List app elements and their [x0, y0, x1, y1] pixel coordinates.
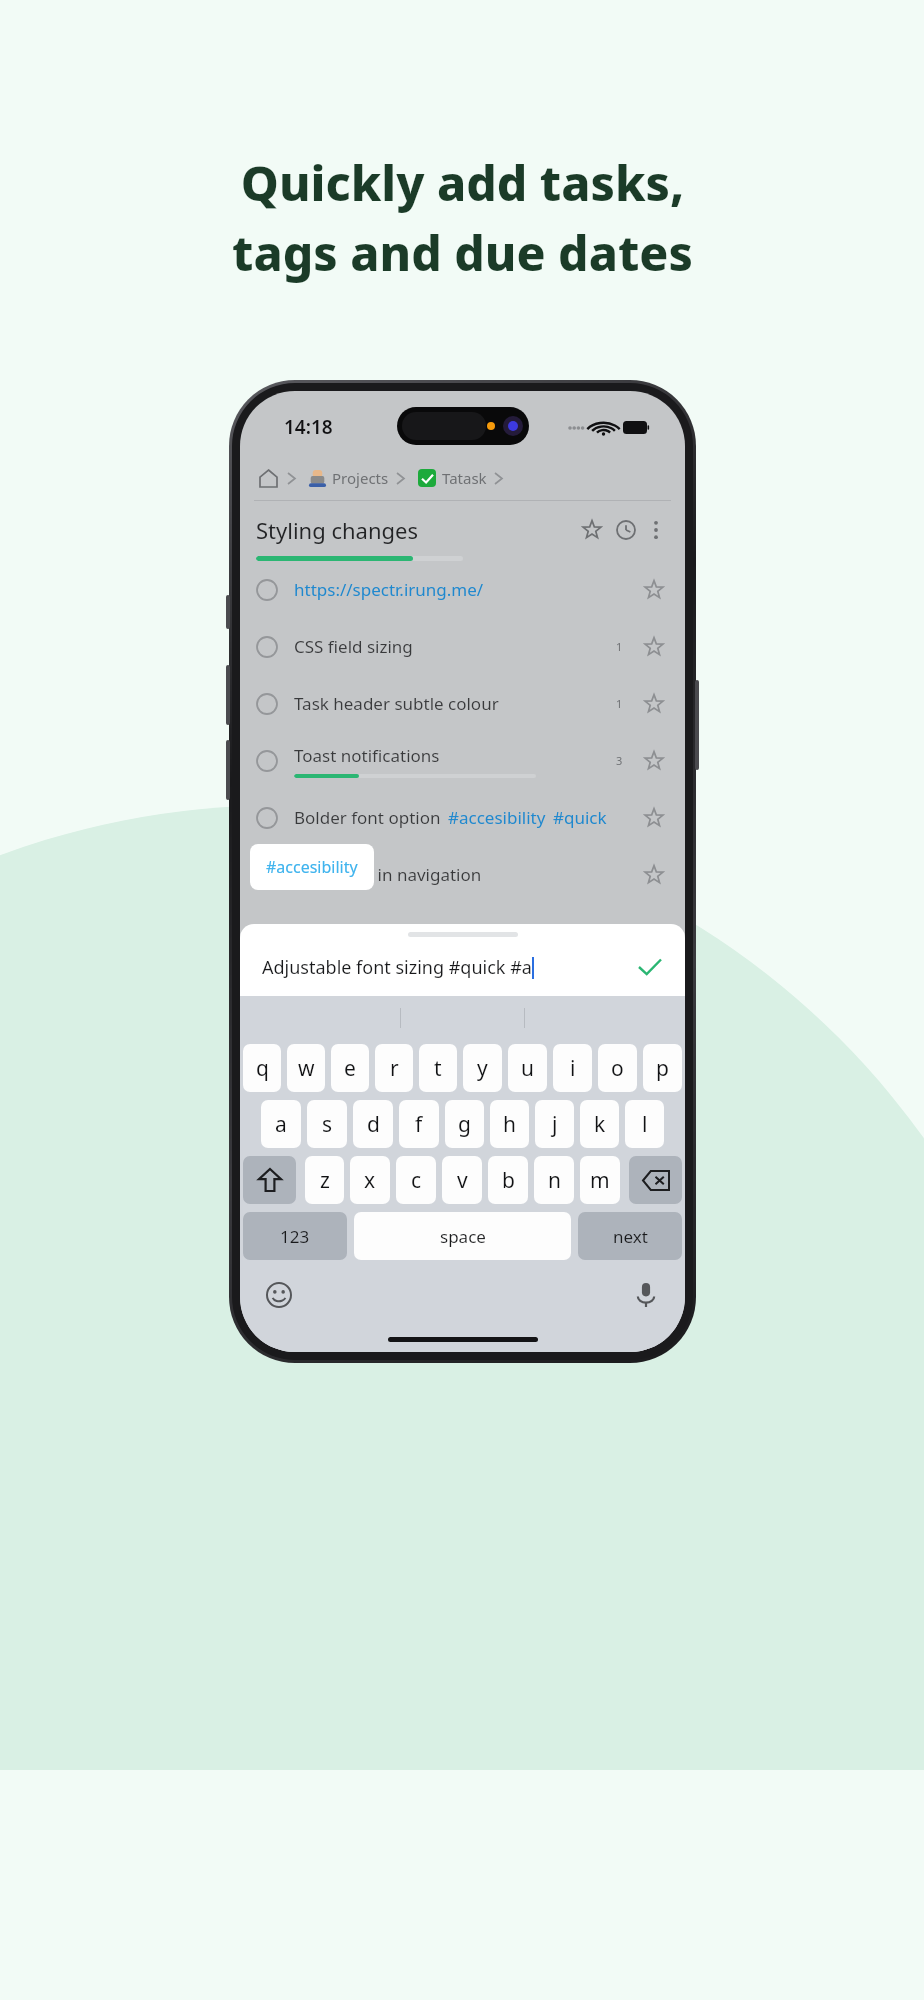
staticText: s — [322, 1110, 333, 1139]
button[interactable]: Favourite task — [639, 575, 669, 605]
button[interactable]: i — [553, 1044, 592, 1092]
button[interactable]: q — [243, 1044, 281, 1092]
button[interactable]: k — [580, 1100, 619, 1148]
staticText: y — [477, 1054, 488, 1083]
staticText: 3 — [616, 753, 623, 768]
button[interactable]: x — [350, 1156, 390, 1204]
staticText: 14:18 — [284, 414, 333, 440]
button[interactable]: More options — [643, 517, 669, 543]
button[interactable]: Favourite — [575, 513, 609, 547]
button[interactable]: Favourite task — [639, 746, 669, 776]
button[interactable]: History — [609, 513, 643, 547]
button[interactable]: Confirm — [633, 950, 667, 984]
button[interactable]: m — [580, 1156, 620, 1204]
button[interactable]: h — [490, 1100, 529, 1148]
button[interactable]: space — [354, 1212, 571, 1260]
button[interactable]: d — [353, 1100, 393, 1148]
button[interactable]: Toast notifications — [240, 732, 685, 789]
staticText: 123 — [280, 1225, 310, 1248]
staticText: a — [275, 1110, 287, 1139]
button[interactable]: Favourite task — [639, 803, 669, 833]
staticText: q — [256, 1054, 269, 1083]
staticText: space — [440, 1225, 486, 1248]
button[interactable]: p — [643, 1044, 682, 1092]
button[interactable]: Favourite task — [639, 632, 669, 662]
button[interactable]: c — [396, 1156, 436, 1204]
button[interactable]: z — [305, 1156, 344, 1204]
staticText: 1 — [616, 639, 623, 654]
button[interactable]: Projects — [332, 468, 389, 488]
button[interactable]: Bolder font option — [240, 789, 685, 846]
button[interactable]: e — [331, 1044, 369, 1092]
button[interactable]: o — [598, 1044, 637, 1092]
button[interactable]: a — [261, 1100, 301, 1148]
button[interactable]: t — [419, 1044, 457, 1092]
staticText: h — [503, 1110, 516, 1139]
staticText: l — [642, 1110, 648, 1139]
button[interactable]: https://spectr.irung.me/ — [240, 561, 685, 618]
button[interactable]: 123 — [243, 1212, 347, 1260]
staticText: next — [613, 1225, 648, 1248]
staticText: e — [344, 1054, 356, 1083]
staticText: Quickly add tasks, tags and due dates — [232, 150, 693, 285]
staticText: #quick — [553, 806, 607, 829]
staticText: Task header subtle colour — [294, 692, 499, 715]
button[interactable]: Voice input — [629, 1278, 663, 1312]
staticText: m — [590, 1166, 610, 1195]
staticText: z — [320, 1166, 330, 1195]
button[interactable]: g — [445, 1100, 484, 1148]
button[interactable]: u — [508, 1044, 547, 1092]
button[interactable]: Tatask — [442, 468, 487, 488]
staticText: p — [656, 1054, 669, 1083]
button[interactable]: v — [442, 1156, 482, 1204]
button[interactable]: CSS field sizing — [240, 618, 685, 675]
staticText: 1 — [616, 696, 623, 711]
button[interactable]: l — [625, 1100, 664, 1148]
staticText: Toast notifications — [294, 744, 440, 767]
staticText: #accesibility — [448, 806, 546, 829]
staticText: x — [364, 1166, 376, 1195]
button[interactable]: y — [463, 1044, 502, 1092]
staticText: #accesibility — [266, 856, 358, 878]
staticText: v — [457, 1166, 468, 1195]
staticText: j — [552, 1110, 558, 1139]
staticText: https://spectr.irung.me/ — [294, 578, 484, 601]
button[interactable]: Backspace — [629, 1156, 682, 1204]
button[interactable]: f — [399, 1100, 439, 1148]
staticText: Bolder font option — [294, 806, 441, 829]
button[interactable]: Task header subtle colour — [240, 675, 685, 732]
staticText: Styling changes — [256, 515, 575, 545]
staticText: d — [367, 1110, 380, 1139]
staticText: g — [458, 1110, 471, 1139]
button[interactable]: shift — [243, 1156, 296, 1204]
staticText: o — [611, 1054, 624, 1083]
staticText: i — [570, 1054, 576, 1083]
button[interactable]: next — [578, 1212, 682, 1260]
button[interactable]: s — [307, 1100, 347, 1148]
staticText: f — [415, 1110, 423, 1139]
button[interactable]: Favourite task — [639, 860, 669, 890]
staticText: r — [390, 1054, 399, 1083]
staticText: Adjustable font sizing #quick #a — [262, 955, 532, 980]
staticText: k — [594, 1110, 606, 1139]
button[interactable]: ...ach task in navigation — [240, 846, 685, 903]
button[interactable]: r — [375, 1044, 413, 1092]
staticText: CSS field sizing — [294, 635, 413, 658]
button[interactable]: j — [535, 1100, 574, 1148]
button[interactable]: w — [287, 1044, 325, 1092]
button[interactable]: Home — [256, 466, 280, 490]
button[interactable]: b — [488, 1156, 528, 1204]
button[interactable]: #accesibility — [250, 844, 374, 890]
button[interactable]: Favourite task — [639, 689, 669, 719]
staticText: ...ach task in navigation — [294, 863, 482, 886]
staticText: c — [411, 1166, 422, 1195]
staticText: t — [434, 1054, 442, 1083]
staticText: u — [521, 1054, 534, 1083]
button[interactable]: n — [534, 1156, 574, 1204]
staticText: b — [502, 1166, 515, 1195]
button[interactable]: Emoji — [262, 1278, 296, 1312]
staticText: n — [548, 1166, 561, 1195]
staticText: w — [298, 1054, 315, 1083]
